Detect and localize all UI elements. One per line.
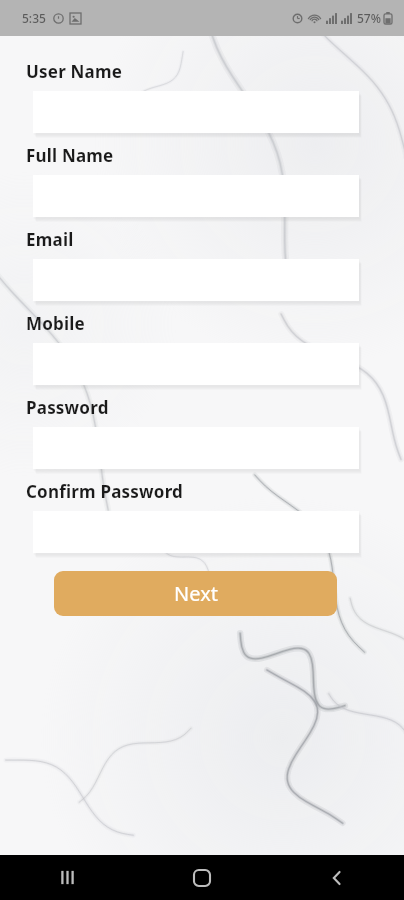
staticText: Mobile <box>26 312 85 335</box>
staticText: 57% <box>357 10 381 26</box>
button[interactable]: User Name <box>33 91 359 134</box>
button[interactable]: Back <box>269 855 404 900</box>
button[interactable]: Recent apps <box>0 855 134 900</box>
button[interactable]: Confirm Password <box>33 511 359 554</box>
staticText: User Name <box>26 60 123 83</box>
button[interactable]: Home <box>134 855 269 900</box>
button[interactable]: Mobile <box>33 343 359 386</box>
staticText: 5:35 <box>22 10 46 26</box>
staticText: Password <box>26 396 109 419</box>
staticText: Email <box>26 228 74 251</box>
button[interactable]: Full Name <box>33 175 359 218</box>
staticText: Full Name <box>26 144 114 167</box>
button[interactable]: Email <box>33 259 359 302</box>
button[interactable]: Password <box>33 427 359 470</box>
staticText: Next <box>174 580 218 607</box>
button[interactable]: Next <box>54 571 337 616</box>
staticText: Confirm Password <box>26 480 184 503</box>
